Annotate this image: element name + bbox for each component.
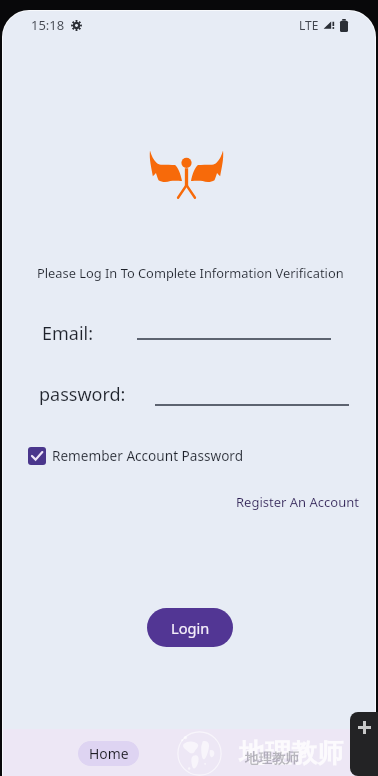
button[interactable] xyxy=(155,386,349,406)
button[interactable]: Add xyxy=(350,712,378,776)
staticText: Home xyxy=(89,744,129,763)
button[interactable]: Login xyxy=(147,608,233,647)
staticText: Email: xyxy=(42,321,94,346)
staticText: 地理教师 xyxy=(239,737,343,770)
staticText: LTE xyxy=(299,17,319,33)
button[interactable]: Remember Account Password xyxy=(28,446,244,465)
staticText: Remember Account Password xyxy=(52,446,244,465)
staticText: 15:18 xyxy=(31,16,65,34)
button[interactable]: Home xyxy=(78,741,139,766)
button[interactable] xyxy=(137,320,331,340)
staticText: Login xyxy=(171,618,210,638)
staticText: Register An Account xyxy=(236,493,359,511)
button[interactable]: Register An Account xyxy=(236,493,359,511)
staticText: 地理教师 xyxy=(245,750,299,767)
staticText: Please Log In To Complete Information Ve… xyxy=(37,264,344,282)
staticText: password: xyxy=(39,382,126,407)
